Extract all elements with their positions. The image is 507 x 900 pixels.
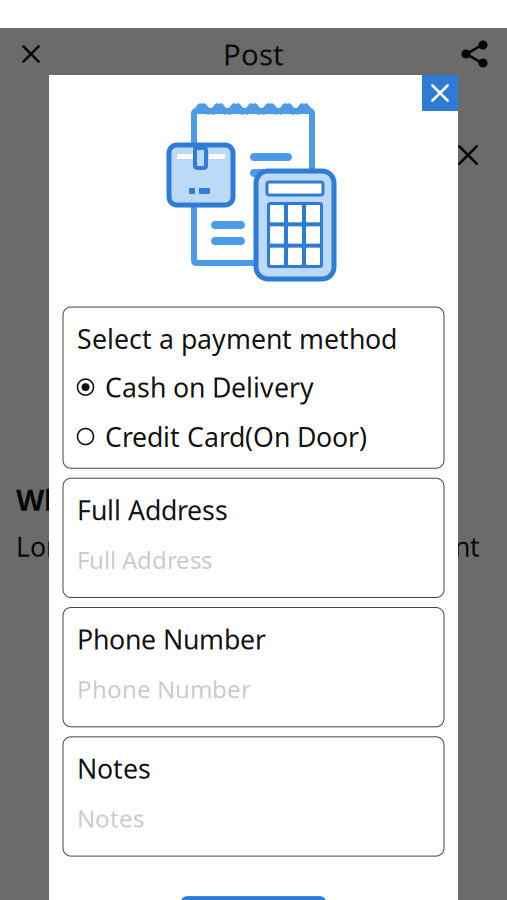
- staticText: Credit Card(On Door): [105, 419, 367, 454]
- staticText: London, United Kingdom — Excellent: [16, 529, 480, 564]
- staticText: Select a payment method: [77, 321, 397, 356]
- button[interactable]: Share: [449, 30, 501, 78]
- staticText: Cash on Delivery: [105, 369, 314, 405]
- button[interactable]: Credit Card(On Door): [77, 405, 430, 468]
- button[interactable]: Close: [6, 31, 56, 77]
- staticText: Full Address: [77, 492, 228, 528]
- button[interactable]: Dismiss: [422, 75, 458, 111]
- staticText: Notes: [77, 751, 151, 786]
- staticText: White Leather Sofa: [16, 480, 297, 519]
- button[interactable]: Full Address: [63, 478, 444, 597]
- staticText: Phone Number: [77, 621, 266, 657]
- staticText: Notes: [77, 802, 144, 834]
- button[interactable]: ORDER: [180, 896, 326, 900]
- staticText: Phone Number: [77, 673, 251, 705]
- button[interactable]: Cash on Delivery: [77, 356, 430, 405]
- staticText: Post: [223, 34, 284, 73]
- button[interactable]: Notes: [63, 737, 444, 856]
- button[interactable]: Phone Number: [63, 607, 444, 727]
- staticText: Full Address: [77, 544, 212, 576]
